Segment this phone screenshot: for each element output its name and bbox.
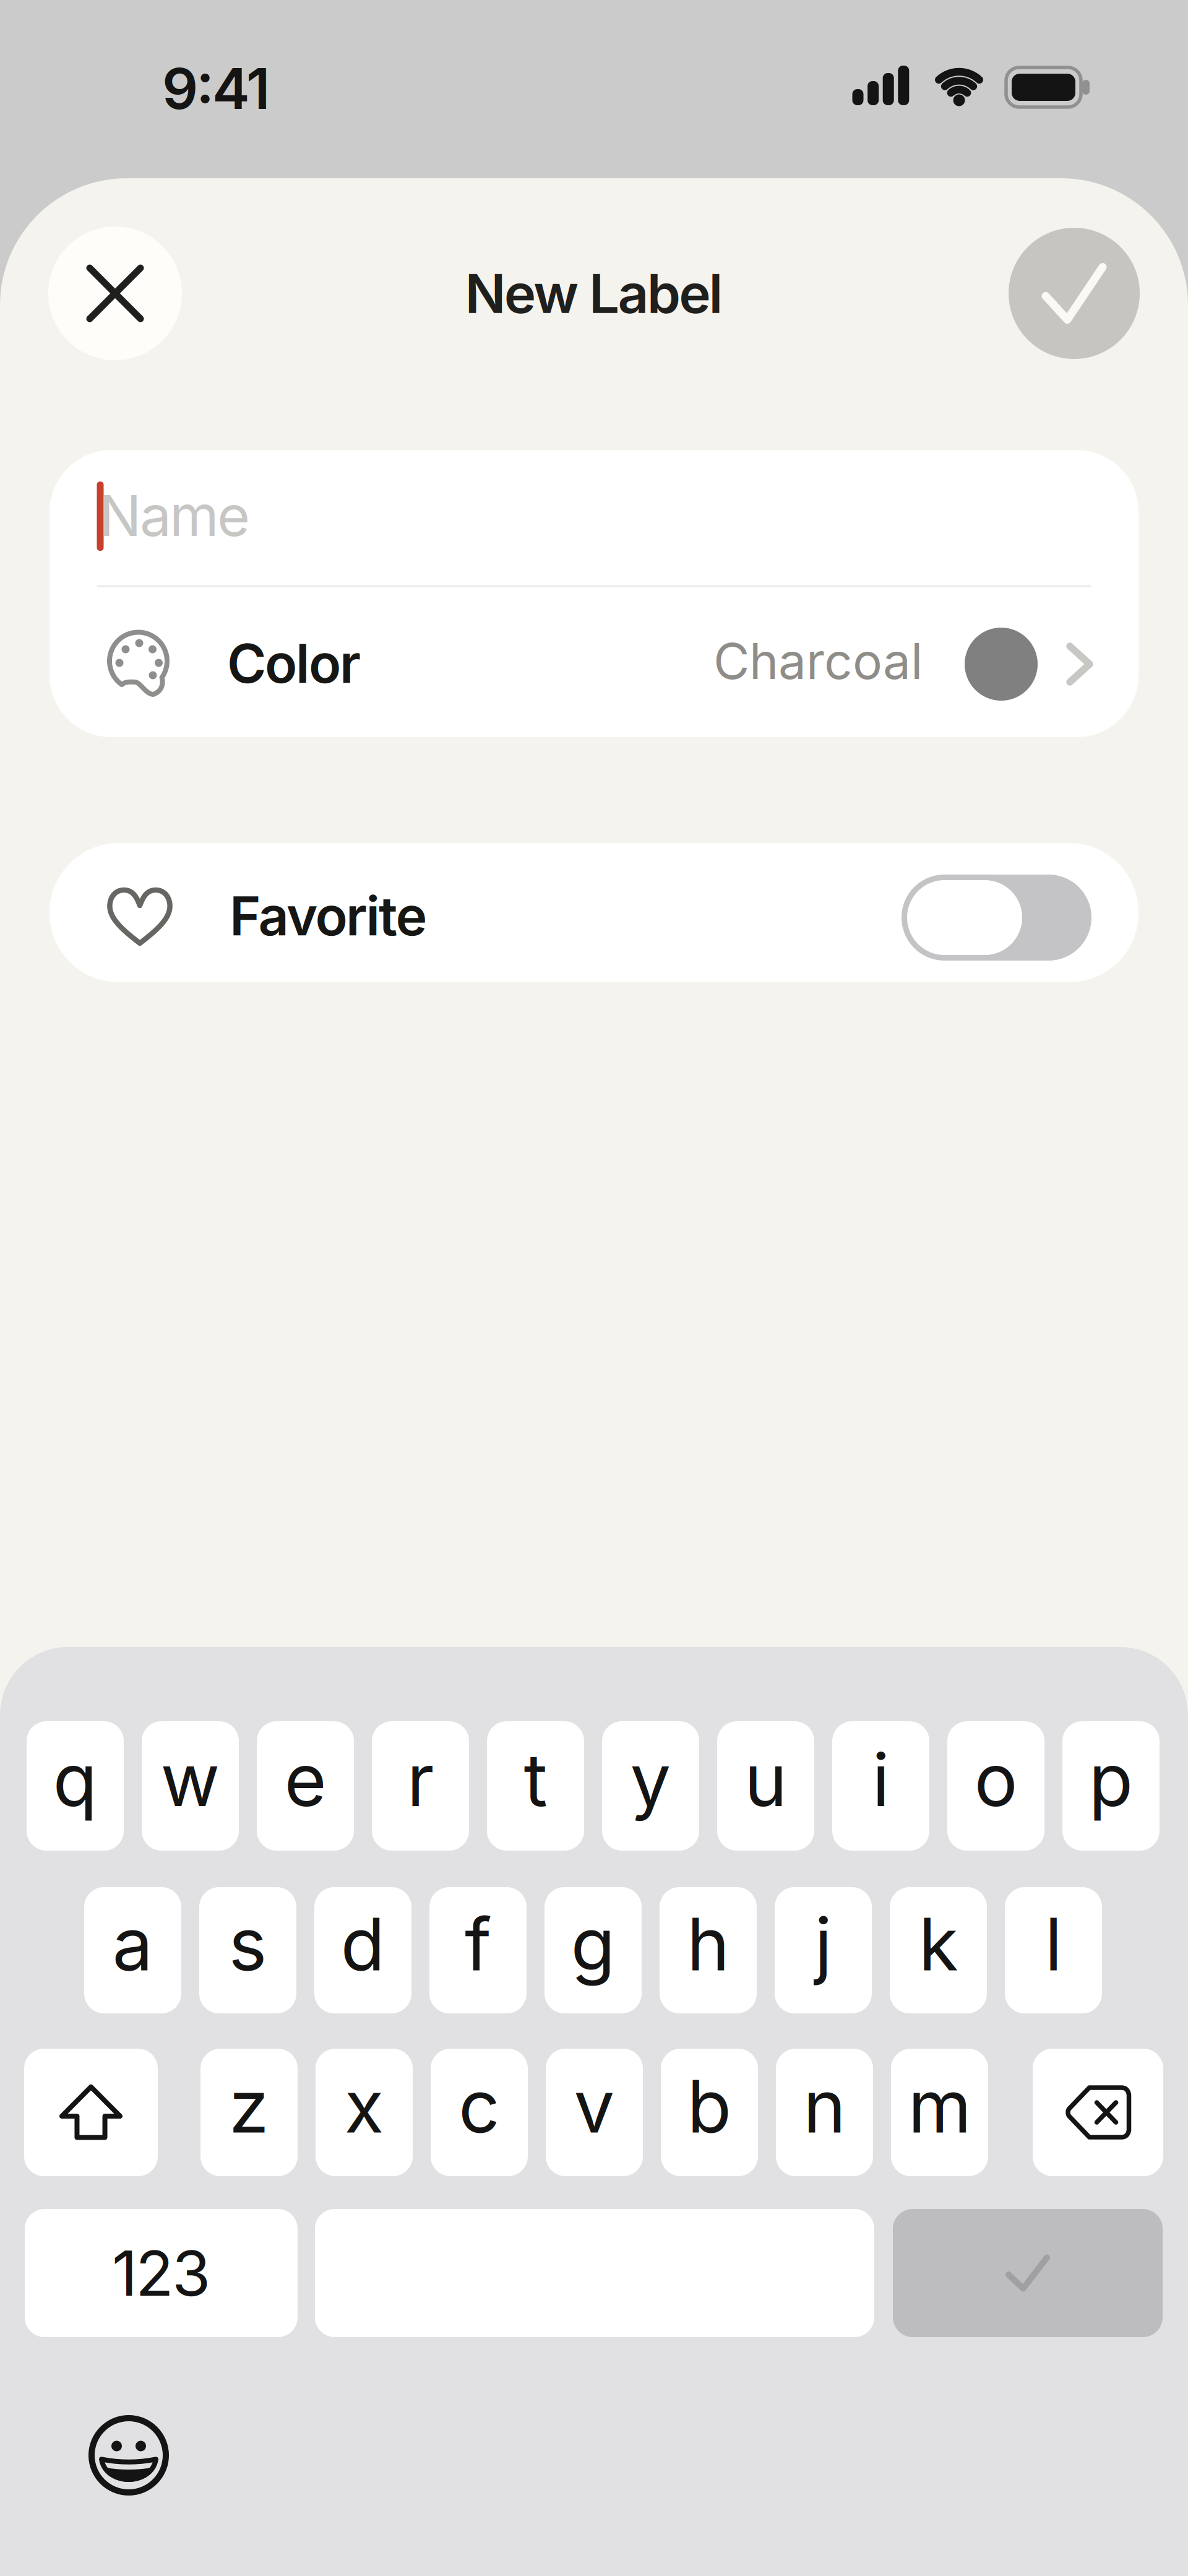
button[interactable]: y bbox=[602, 1721, 699, 1851]
staticText: Name bbox=[99, 481, 250, 550]
staticText: d bbox=[341, 1900, 385, 1988]
staticText: j bbox=[815, 1900, 832, 1988]
staticText: k bbox=[919, 1900, 958, 1988]
button[interactable]: q bbox=[27, 1721, 124, 1851]
button[interactable]: Emoji bbox=[88, 2415, 169, 2496]
staticText: q bbox=[53, 1736, 97, 1824]
staticText: i bbox=[872, 1736, 889, 1824]
button[interactable]: a bbox=[84, 1887, 181, 2013]
staticText: New Label bbox=[465, 261, 723, 326]
staticText: b bbox=[687, 2062, 732, 2150]
button[interactable]: c bbox=[431, 2049, 528, 2176]
button[interactable]: m bbox=[891, 2049, 988, 2176]
staticText: a bbox=[112, 1900, 153, 1988]
button[interactable]: Save bbox=[1009, 228, 1140, 359]
button[interactable]: t bbox=[487, 1721, 584, 1851]
staticText: Color bbox=[227, 631, 361, 696]
button[interactable]: u bbox=[717, 1721, 814, 1851]
staticText: Favorite bbox=[230, 884, 427, 948]
button[interactable]: Return bbox=[893, 2209, 1163, 2337]
staticText: m bbox=[908, 2062, 971, 2150]
button[interactable]: Favorite bbox=[902, 875, 1091, 961]
staticText: Charcoal bbox=[713, 631, 923, 691]
staticText: p bbox=[1089, 1736, 1133, 1824]
staticText: r bbox=[407, 1736, 434, 1824]
staticText: w bbox=[161, 1736, 220, 1824]
staticText: v bbox=[574, 2062, 615, 2150]
staticText: e bbox=[284, 1736, 326, 1824]
button[interactable]: e bbox=[257, 1721, 354, 1851]
staticText: y bbox=[630, 1736, 671, 1824]
button[interactable]: z bbox=[200, 2049, 298, 2176]
button[interactable]: Delete bbox=[1033, 2049, 1163, 2176]
staticText: g bbox=[571, 1900, 615, 1988]
button[interactable]: p bbox=[1062, 1721, 1160, 1851]
button[interactable]: Color, Charcoal bbox=[49, 589, 1138, 737]
button[interactable]: d bbox=[314, 1887, 411, 2013]
staticText: t bbox=[524, 1736, 547, 1824]
button[interactable]: v bbox=[546, 2049, 643, 2176]
staticText: 123 bbox=[112, 2235, 210, 2311]
staticText: s bbox=[229, 1900, 267, 1988]
button[interactable]: o bbox=[947, 1721, 1044, 1851]
button[interactable]: w bbox=[142, 1721, 239, 1851]
staticText: n bbox=[803, 2062, 846, 2150]
button[interactable]: Name bbox=[49, 450, 1138, 586]
button[interactable]: b bbox=[661, 2049, 758, 2176]
button[interactable]: n bbox=[776, 2049, 873, 2176]
staticText: x bbox=[344, 2062, 384, 2150]
button[interactable]: g bbox=[544, 1887, 642, 2013]
staticText: o bbox=[974, 1736, 1018, 1824]
button[interactable]: f bbox=[429, 1887, 527, 2013]
button[interactable]: s bbox=[199, 1887, 296, 2013]
button[interactable]: j bbox=[775, 1887, 872, 2013]
button[interactable]: r bbox=[372, 1721, 469, 1851]
staticText: l bbox=[1045, 1900, 1062, 1988]
button[interactable]: Close bbox=[48, 227, 182, 360]
staticText: h bbox=[687, 1900, 730, 1988]
button[interactable]: Numbers bbox=[25, 2209, 298, 2337]
button[interactable]: l bbox=[1005, 1887, 1102, 2013]
button[interactable]: k bbox=[890, 1887, 987, 2013]
staticText: 9:41 bbox=[162, 54, 270, 123]
staticText: f bbox=[465, 1900, 491, 1988]
staticText: z bbox=[229, 2062, 269, 2150]
staticText: u bbox=[744, 1736, 787, 1824]
button[interactable]: x bbox=[316, 2049, 413, 2176]
button[interactable]: h bbox=[660, 1887, 757, 2013]
button[interactable]: Shift bbox=[24, 2049, 158, 2176]
staticText: c bbox=[458, 2062, 500, 2150]
button[interactable]: i bbox=[832, 1721, 929, 1851]
